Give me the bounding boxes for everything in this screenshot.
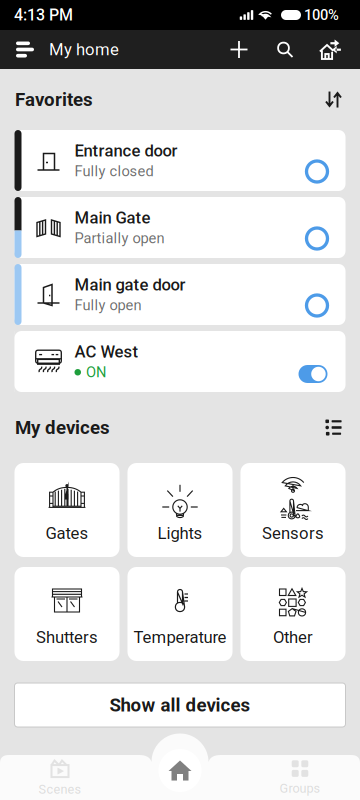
button[interactable]: Temperature: [127, 567, 232, 661]
button[interactable]: Entrance door: [14, 130, 345, 191]
button[interactable]: Groups: [240, 756, 360, 800]
button[interactable]: Sort: [320, 86, 347, 113]
staticText: 4:13 PM: [14, 6, 73, 24]
button[interactable]: List view: [320, 414, 347, 441]
staticText: 100%: [304, 6, 339, 24]
button[interactable]: Search: [262, 30, 308, 68]
staticText: AC West: [74, 342, 138, 362]
button[interactable]: Other: [240, 567, 345, 661]
staticText: Fully open: [74, 297, 141, 314]
button[interactable]: Gates: [14, 463, 119, 557]
button[interactable]: Main Gate: [14, 197, 345, 258]
staticText: My home: [49, 40, 119, 59]
staticText: Show all devices: [109, 694, 250, 716]
staticText: Scenes: [38, 782, 81, 797]
staticText: Gates: [45, 523, 88, 543]
button[interactable]: AC West: [14, 331, 345, 392]
button[interactable]: Lights: [127, 463, 232, 557]
staticText: Partially open: [74, 230, 164, 247]
button[interactable]: Scenes: [0, 756, 120, 800]
button[interactable]: Show all devices: [14, 683, 345, 727]
staticText: Temperature: [133, 627, 226, 647]
button[interactable]: Menu: [0, 30, 49, 68]
staticText: Other: [273, 627, 313, 647]
staticText: Entrance door: [74, 141, 177, 161]
staticText: Favorites: [15, 89, 93, 110]
staticText: My devices: [15, 417, 110, 438]
button[interactable]: Home: [158, 749, 201, 792]
staticText: Main gate door: [74, 275, 185, 295]
staticText: Main Gate: [74, 208, 150, 228]
button[interactable]: Shutters: [14, 567, 119, 661]
button[interactable]: Main gate door: [14, 264, 345, 325]
button[interactable]: Add device: [216, 30, 262, 68]
button[interactable]: Switch home: [308, 30, 353, 69]
staticText: Sensors: [262, 523, 324, 543]
button[interactable]: Sensors: [240, 463, 345, 557]
staticText: ON: [86, 364, 106, 381]
staticText: Fully closed: [74, 163, 153, 180]
staticText: Groups: [279, 781, 320, 796]
staticText: Shutters: [36, 627, 98, 647]
staticText: Lights: [157, 523, 202, 543]
